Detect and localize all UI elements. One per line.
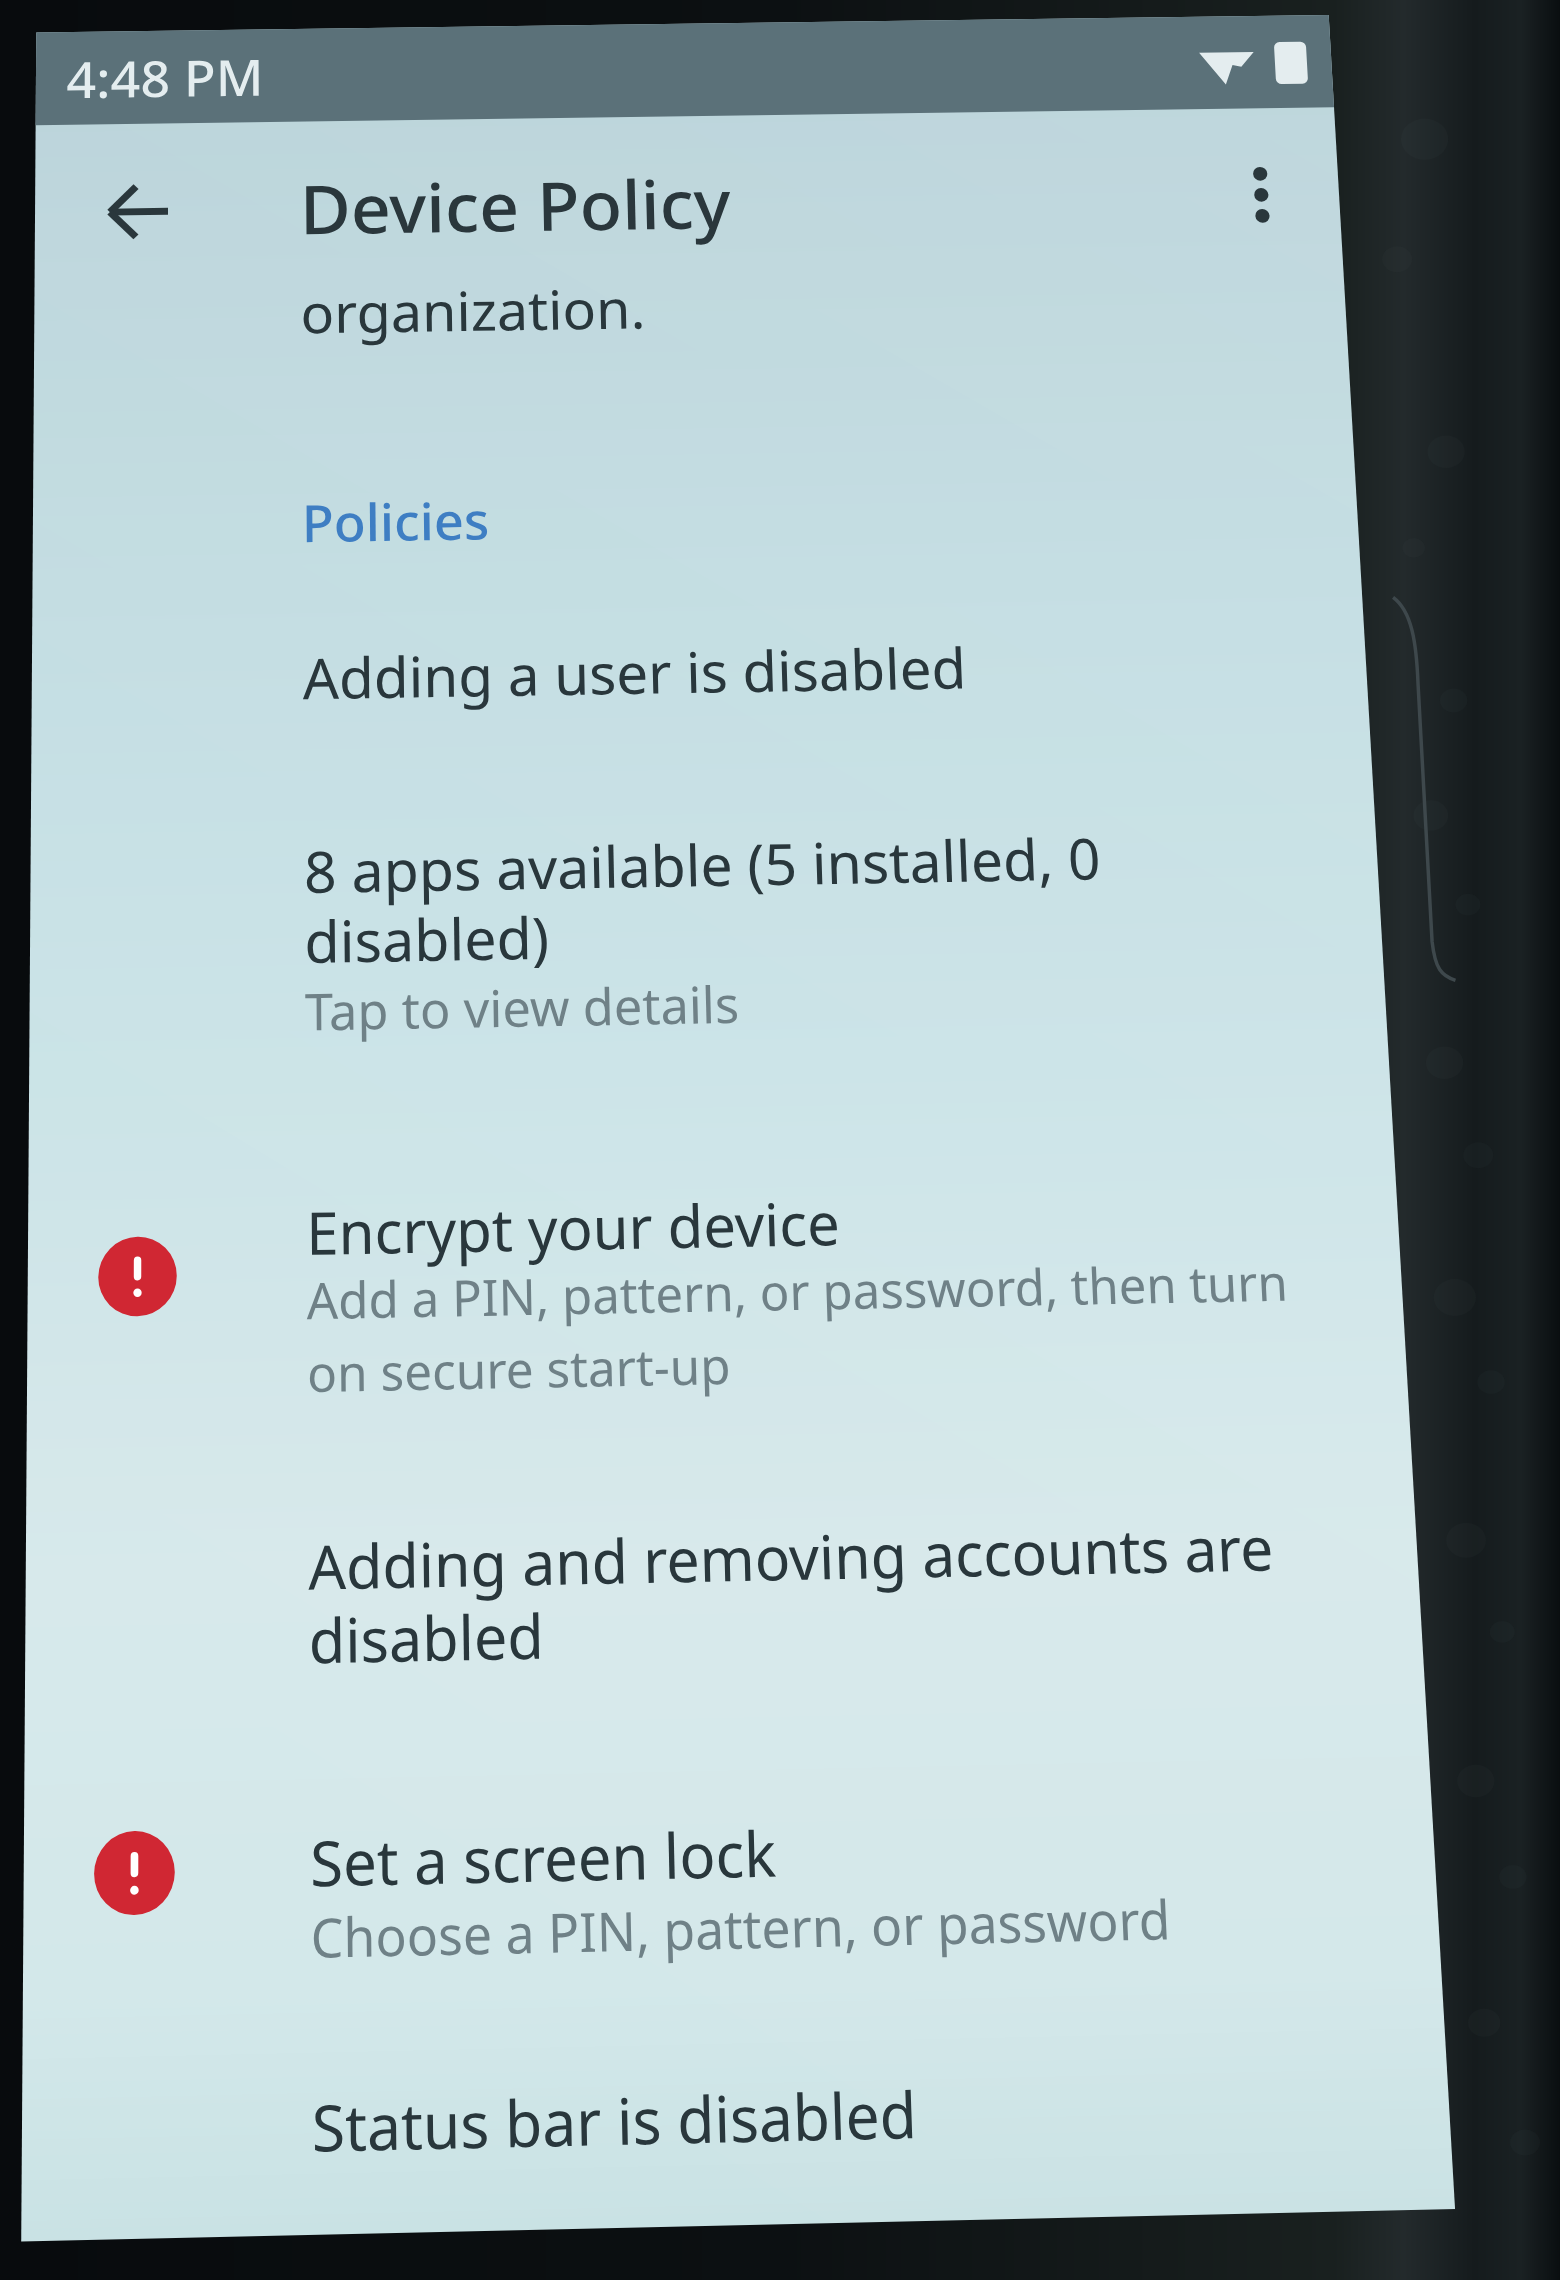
button[interactable]: Back [81,156,196,268]
staticText: Adding and removing accounts are [308,1506,1275,1607]
staticText: disabled) [304,898,550,980]
button[interactable] [29,780,1387,1049]
staticText: Encrypt your device [306,1182,841,1272]
button[interactable]: More options [1202,139,1321,251]
staticText: organization. [300,271,646,349]
button[interactable] [25,1466,1425,1719]
staticText: Tap to view details [305,968,741,1044]
staticText: Device Policy [300,157,732,254]
staticText: Adding a user is disabled [302,629,968,716]
staticText: 4:48 PM [66,42,264,113]
staticText: Status bar is disabled [311,2070,919,2170]
staticText: Choose a PIN, pattern, or password [310,1882,1172,1974]
button[interactable] [23,1764,1442,2010]
staticText: disabled [308,1593,544,1681]
staticText: Add a PIN, pattern, or password, then tu… [306,1248,1289,1335]
button[interactable]: Warning [98,1236,177,1317]
button[interactable] [27,1140,1408,1420]
button[interactable] [31,588,1370,754]
button[interactable] [34,237,1350,405]
staticText: Policies [302,484,490,557]
staticText: Set a screen lock [310,1810,777,1905]
staticText: 8 apps available (5 installed, 0 [304,819,1103,910]
staticText: on secure start-up [307,1331,731,1408]
button[interactable]: Warning [94,1830,175,1916]
button[interactable] [21,2022,1453,2214]
